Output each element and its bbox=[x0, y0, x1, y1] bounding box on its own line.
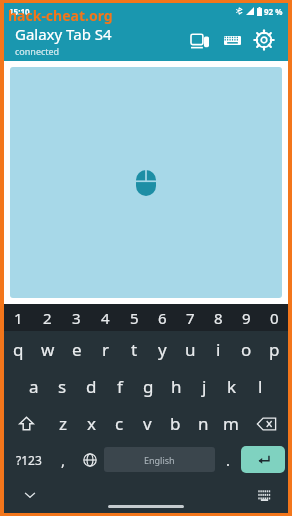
button[interactable]: k bbox=[218, 368, 246, 405]
button[interactable]: t bbox=[120, 331, 148, 368]
button[interactable]: Switch input method bbox=[250, 481, 278, 509]
button[interactable]: 0 bbox=[260, 304, 288, 331]
staticText: 1 bbox=[14, 308, 23, 328]
staticText: Galaxy Tab S4 bbox=[15, 24, 112, 44]
button[interactable]: m bbox=[217, 405, 245, 442]
button[interactable]: q bbox=[4, 331, 33, 368]
staticText: k bbox=[227, 375, 237, 398]
staticText: f bbox=[117, 375, 123, 398]
button[interactable]: a bbox=[19, 368, 48, 405]
staticText: hack-cheat.org bbox=[8, 6, 113, 25]
staticText: English bbox=[144, 454, 175, 466]
staticText: ?123 bbox=[16, 452, 42, 468]
button[interactable]: v bbox=[133, 405, 161, 442]
button[interactable]: f bbox=[106, 368, 134, 405]
staticText: b bbox=[170, 412, 181, 435]
staticText: z bbox=[59, 412, 67, 435]
staticText: v bbox=[143, 412, 152, 435]
staticText: 8 bbox=[214, 308, 223, 328]
staticText: 15:10 bbox=[9, 6, 30, 17]
staticText: r bbox=[102, 338, 110, 361]
staticText: n bbox=[198, 412, 209, 435]
staticText: j bbox=[202, 375, 207, 398]
staticText: connected bbox=[15, 45, 60, 57]
button[interactable]: e bbox=[62, 331, 91, 368]
staticText: e bbox=[72, 338, 82, 361]
button[interactable]: 9 bbox=[232, 304, 260, 331]
button[interactable]: p bbox=[260, 331, 288, 368]
staticText: 7 bbox=[186, 308, 195, 328]
staticText: a bbox=[29, 375, 39, 398]
button[interactable]: Enter bbox=[241, 446, 285, 473]
staticText: t bbox=[131, 338, 138, 361]
button[interactable]: b bbox=[161, 405, 189, 442]
button[interactable]: Settings bbox=[248, 24, 280, 56]
staticText: 3 bbox=[72, 308, 81, 328]
staticText: o bbox=[241, 338, 252, 361]
button[interactable]: Touchpad bbox=[10, 67, 282, 298]
button[interactable]: , bbox=[50, 442, 76, 477]
button[interactable]: ?123 bbox=[7, 442, 50, 477]
staticText: 5 bbox=[130, 308, 139, 328]
button[interactable]: l bbox=[246, 368, 274, 405]
button[interactable]: 7 bbox=[176, 304, 204, 331]
button[interactable]: . bbox=[215, 442, 241, 477]
button[interactable]: 4 bbox=[91, 304, 120, 331]
staticText: s bbox=[58, 375, 67, 398]
button[interactable]: d bbox=[77, 368, 106, 405]
staticText: l bbox=[258, 375, 263, 398]
staticText: c bbox=[115, 412, 124, 435]
button[interactable]: Backspace bbox=[245, 405, 288, 442]
staticText: g bbox=[143, 375, 154, 398]
button[interactable]: n bbox=[189, 405, 217, 442]
button[interactable]: Change language bbox=[76, 442, 104, 477]
staticText: 4 bbox=[101, 308, 110, 328]
staticText: h bbox=[171, 375, 182, 398]
staticText: 2 bbox=[43, 308, 52, 328]
staticText: 0 bbox=[270, 308, 279, 328]
staticText: , bbox=[61, 450, 66, 470]
button[interactable]: English bbox=[104, 447, 215, 472]
button[interactable]: h bbox=[162, 368, 190, 405]
staticText: w bbox=[41, 338, 55, 361]
button[interactable]: 8 bbox=[204, 304, 232, 331]
button[interactable]: c bbox=[105, 405, 133, 442]
staticText: x bbox=[87, 412, 96, 435]
button[interactable]: u bbox=[176, 331, 204, 368]
button[interactable]: o bbox=[232, 331, 260, 368]
button[interactable]: 1 bbox=[4, 304, 33, 331]
button[interactable]: y bbox=[148, 331, 176, 368]
button[interactable]: w bbox=[33, 331, 62, 368]
staticText: q bbox=[13, 338, 24, 361]
button[interactable]: 6 bbox=[148, 304, 176, 331]
staticText: 92 % bbox=[264, 6, 283, 17]
staticText: . bbox=[226, 450, 231, 470]
staticText: y bbox=[158, 338, 167, 361]
button[interactable]: 3 bbox=[62, 304, 91, 331]
button[interactable]: Keyboard bbox=[216, 24, 248, 56]
button[interactable]: j bbox=[190, 368, 218, 405]
button[interactable]: 5 bbox=[120, 304, 148, 331]
staticText: m bbox=[223, 412, 239, 435]
staticText: p bbox=[269, 338, 280, 361]
button[interactable]: Shift bbox=[4, 405, 48, 442]
button[interactable]: r bbox=[91, 331, 120, 368]
button[interactable]: x bbox=[77, 405, 105, 442]
button[interactable]: i bbox=[204, 331, 232, 368]
button[interactable]: s bbox=[48, 368, 77, 405]
staticText: i bbox=[216, 338, 221, 361]
button[interactable]: g bbox=[134, 368, 162, 405]
staticText: u bbox=[185, 338, 196, 361]
staticText: 6 bbox=[158, 308, 167, 328]
staticText: 9 bbox=[242, 308, 251, 328]
button[interactable]: 2 bbox=[33, 304, 62, 331]
button[interactable]: Devices bbox=[184, 24, 216, 56]
staticText: d bbox=[86, 375, 97, 398]
button[interactable]: z bbox=[48, 405, 77, 442]
button[interactable]: Hide keyboard bbox=[16, 481, 44, 509]
